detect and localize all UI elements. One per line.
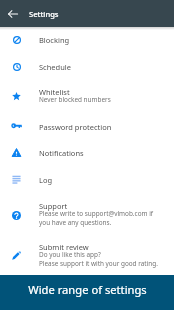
button[interactable]: Notifications bbox=[0, 140, 174, 165]
staticText: Schedule bbox=[39, 62, 71, 72]
staticText: Please write to support@vlmob.com if you… bbox=[39, 209, 153, 227]
button[interactable]: Wide range of settings bbox=[0, 275, 174, 310]
button[interactable]: Submit review bbox=[0, 236, 174, 275]
button[interactable]: Blocking bbox=[0, 27, 174, 53]
staticText: Support bbox=[39, 201, 68, 211]
staticText: Settings bbox=[29, 9, 59, 19]
button[interactable]: Support bbox=[0, 194, 174, 236]
button[interactable]: Schedule bbox=[0, 53, 174, 80]
button[interactable]: Log bbox=[0, 165, 174, 194]
staticText: Do you like this app? Please support it … bbox=[39, 250, 158, 268]
button[interactable]: Whitelist bbox=[0, 80, 174, 113]
staticText: Blocking bbox=[39, 35, 70, 45]
staticText: Notifications bbox=[39, 148, 84, 158]
button[interactable]: Back bbox=[0, 0, 26, 27]
staticText: Password protection bbox=[39, 122, 112, 132]
staticText: Never blocked numbers bbox=[39, 95, 111, 104]
staticText: Whitelist bbox=[39, 87, 70, 97]
staticText: Submit review bbox=[39, 242, 89, 252]
button[interactable]: Password protection bbox=[0, 113, 174, 140]
staticText: Log bbox=[39, 175, 53, 185]
staticText: Wide range of settings bbox=[28, 282, 147, 297]
